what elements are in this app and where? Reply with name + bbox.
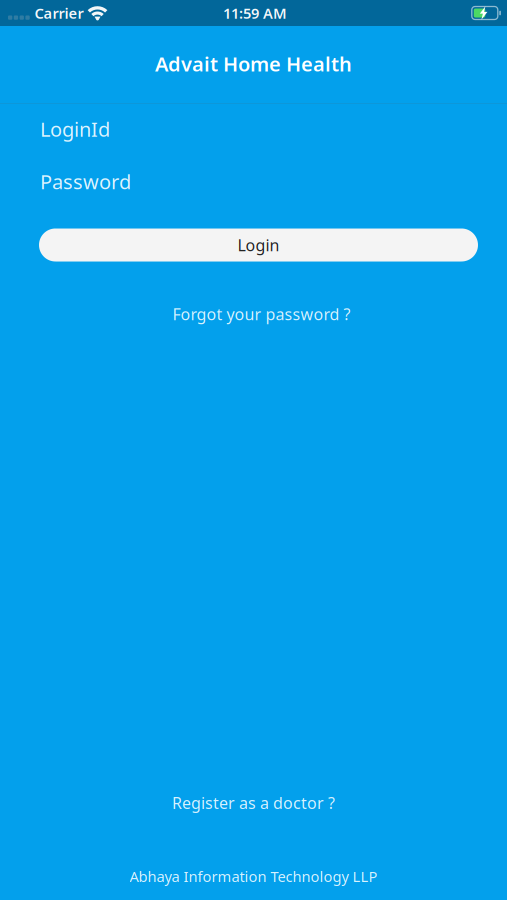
button[interactable]: Register as a doctor ? [158, 782, 349, 823]
staticText: 11:59 AM [223, 3, 287, 23]
staticText: Password [40, 168, 131, 195]
button[interactable]: Forgot your password ? [158, 293, 364, 335]
button[interactable]: LoginId [0, 114, 507, 144]
staticText: Abhaya Information Technology LLP [129, 866, 377, 886]
button[interactable]: Password [0, 166, 507, 196]
staticText: Carrier [34, 3, 83, 23]
staticText: LoginId [40, 116, 110, 142]
staticText: Advait Home Health [155, 50, 352, 77]
staticText: Register as a doctor ? [172, 792, 335, 813]
staticText: Forgot your password ? [172, 303, 350, 325]
staticText: Login [237, 234, 279, 256]
button[interactable]: Login [39, 228, 478, 261]
